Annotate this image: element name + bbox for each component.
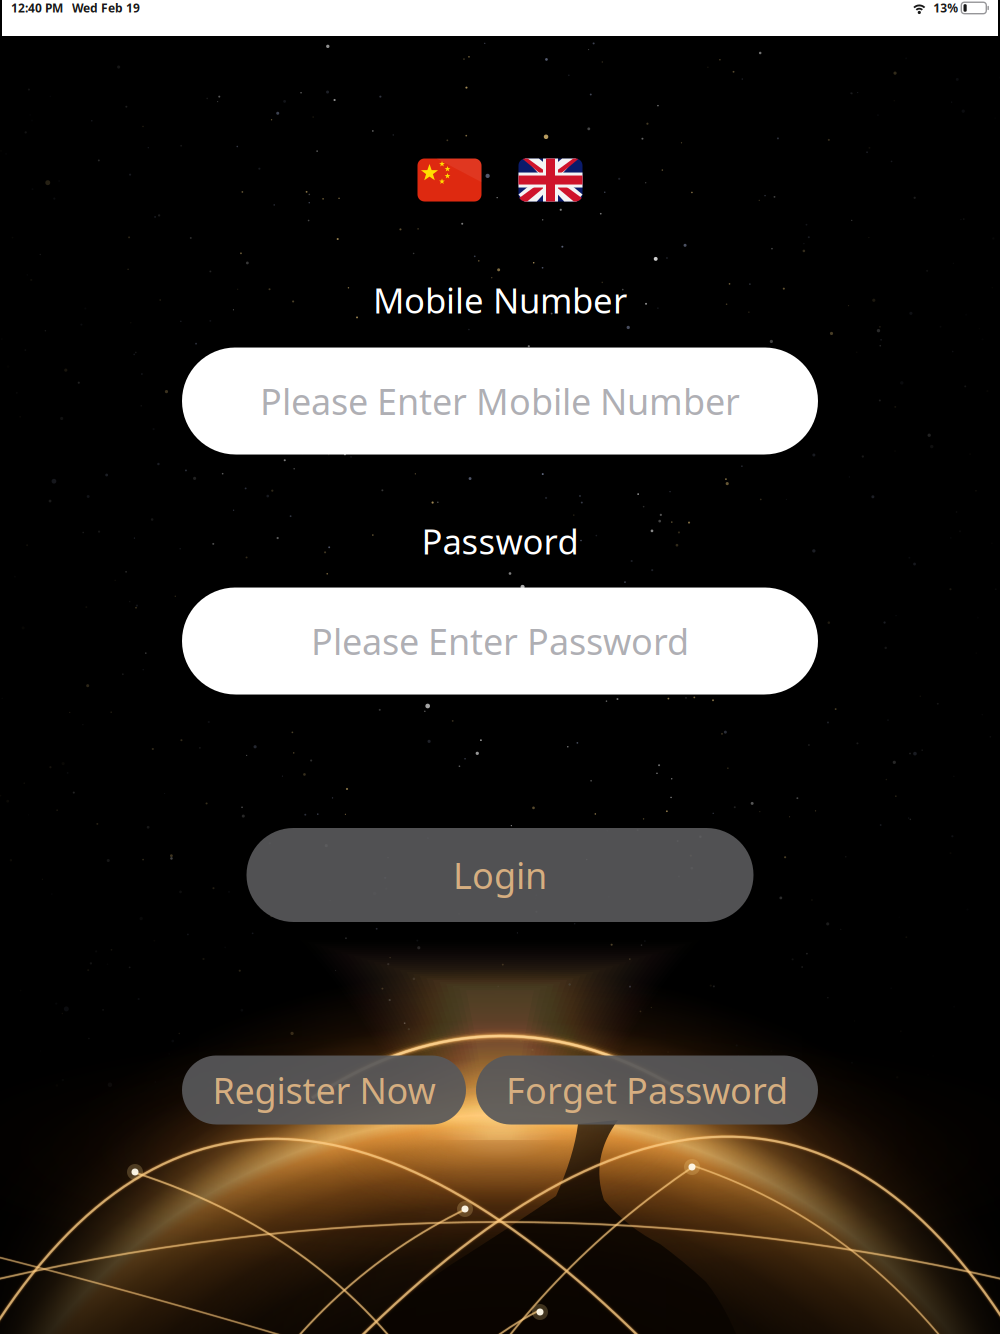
button[interactable]: Chinese language xyxy=(417,158,481,201)
staticText: Please Enter Password xyxy=(311,617,689,665)
button[interactable]: Forget Password xyxy=(476,1055,818,1124)
staticText: Password xyxy=(421,518,578,564)
staticText: Please Enter Mobile Number xyxy=(260,377,740,425)
button[interactable]: English language xyxy=(518,158,582,201)
staticText: Wed Feb 19 xyxy=(72,0,140,16)
staticText: 13% xyxy=(933,0,958,16)
button[interactable]: Register Now xyxy=(182,1055,466,1124)
staticText: Register Now xyxy=(212,1066,435,1114)
staticText: Login xyxy=(453,851,547,899)
button[interactable]: Login xyxy=(246,828,753,922)
button[interactable]: Please Enter Mobile Number xyxy=(182,347,818,454)
staticText: Forget Password xyxy=(506,1066,788,1114)
button[interactable]: Please Enter Password xyxy=(182,587,818,694)
staticText: Mobile Number xyxy=(373,277,627,323)
staticText: 12:40 PM xyxy=(11,0,63,16)
